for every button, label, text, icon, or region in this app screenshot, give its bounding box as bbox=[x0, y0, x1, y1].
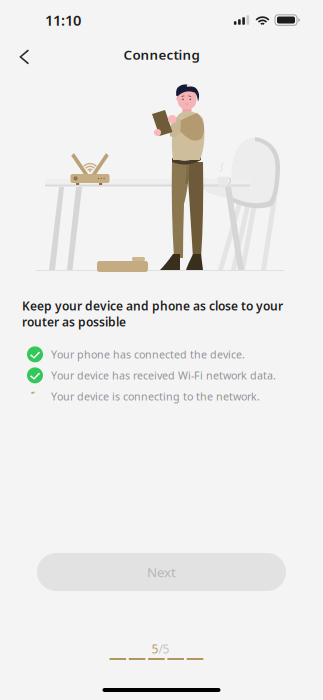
staticText: Connecting bbox=[123, 46, 199, 63]
staticText: 11:10 bbox=[45, 10, 81, 30]
button[interactable]: Next bbox=[37, 553, 286, 591]
staticText: Keep your device and phone as close to y… bbox=[22, 298, 283, 330]
staticText: 5 bbox=[151, 641, 158, 657]
staticText: Your phone has connected the device. bbox=[51, 347, 245, 361]
staticText: /5 bbox=[158, 641, 169, 657]
staticText: Your device has received Wi-Fi network d… bbox=[51, 368, 276, 382]
button[interactable]: Back bbox=[8, 41, 40, 72]
staticText: Next bbox=[147, 563, 176, 581]
staticText: Your device is connecting to the network… bbox=[51, 389, 260, 403]
